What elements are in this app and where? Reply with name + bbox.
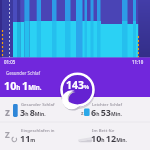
staticText: 3h 8Min. bbox=[20, 106, 46, 118]
staticText: Leichter Schlaf bbox=[92, 101, 123, 107]
button[interactable] bbox=[75, 98, 150, 121]
staticText: Z bbox=[5, 129, 10, 140]
staticText: z bbox=[5, 105, 10, 119]
staticText: 143% bbox=[66, 78, 89, 92]
staticText: z bbox=[81, 110, 84, 117]
staticText: Gesunder Schlaf bbox=[21, 101, 55, 107]
staticText: 11m bbox=[20, 132, 36, 144]
button[interactable] bbox=[75, 124, 150, 147]
staticText: 10h 12Min. bbox=[91, 132, 128, 144]
staticText: 11:10 bbox=[132, 59, 144, 65]
staticText: 10h 1Min. bbox=[4, 78, 42, 93]
staticText: 6h 53Min. bbox=[91, 106, 122, 118]
button[interactable] bbox=[0, 98, 75, 121]
button[interactable]: 143% bbox=[59, 77, 96, 93]
staticText: Im Bett für bbox=[92, 127, 115, 133]
staticText: Eingeschlafen in bbox=[21, 127, 55, 133]
staticText: 01:05 bbox=[4, 59, 16, 65]
staticText: Gesunder Schlaf bbox=[6, 70, 41, 76]
button[interactable] bbox=[0, 124, 75, 147]
